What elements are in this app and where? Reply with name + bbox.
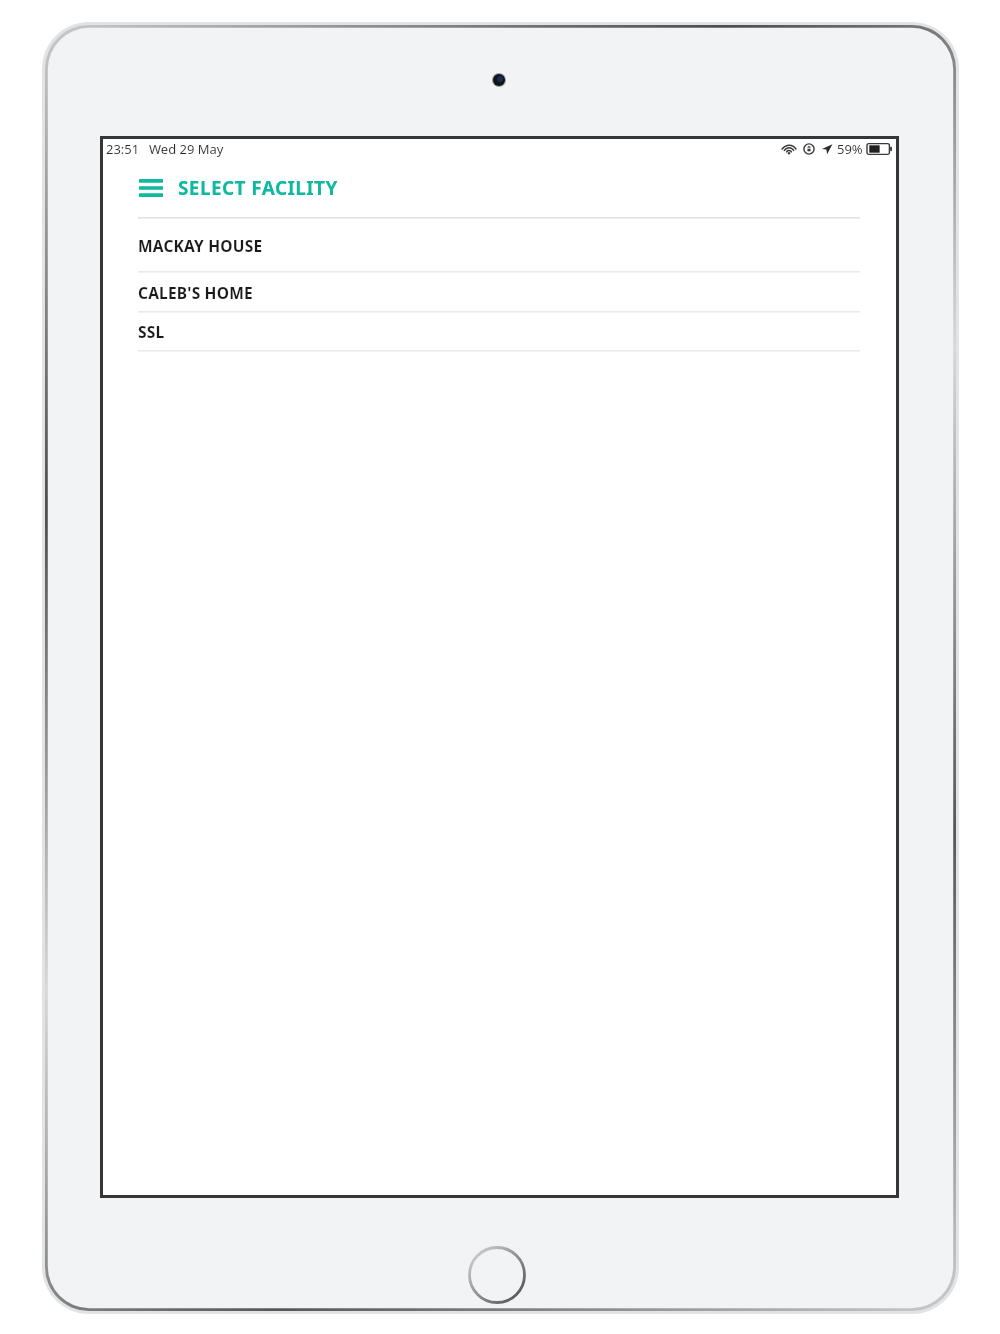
staticText: 59% (837, 140, 863, 158)
button[interactable]: SSL (103, 313, 896, 350)
staticText: SELECT FACILITY (178, 175, 338, 201)
staticText: 23:51 (106, 140, 140, 158)
staticText: CALEB'S HOME (138, 282, 253, 303)
staticText: Wed 29 May (149, 140, 224, 158)
button[interactable]: Open navigation menu (136, 171, 166, 205)
button[interactable]: MACKAY HOUSE (103, 219, 896, 271)
staticText: SSL (138, 321, 165, 342)
staticText: MACKAY HOUSE (138, 235, 263, 256)
button[interactable]: CALEB'S HOME (103, 273, 896, 311)
